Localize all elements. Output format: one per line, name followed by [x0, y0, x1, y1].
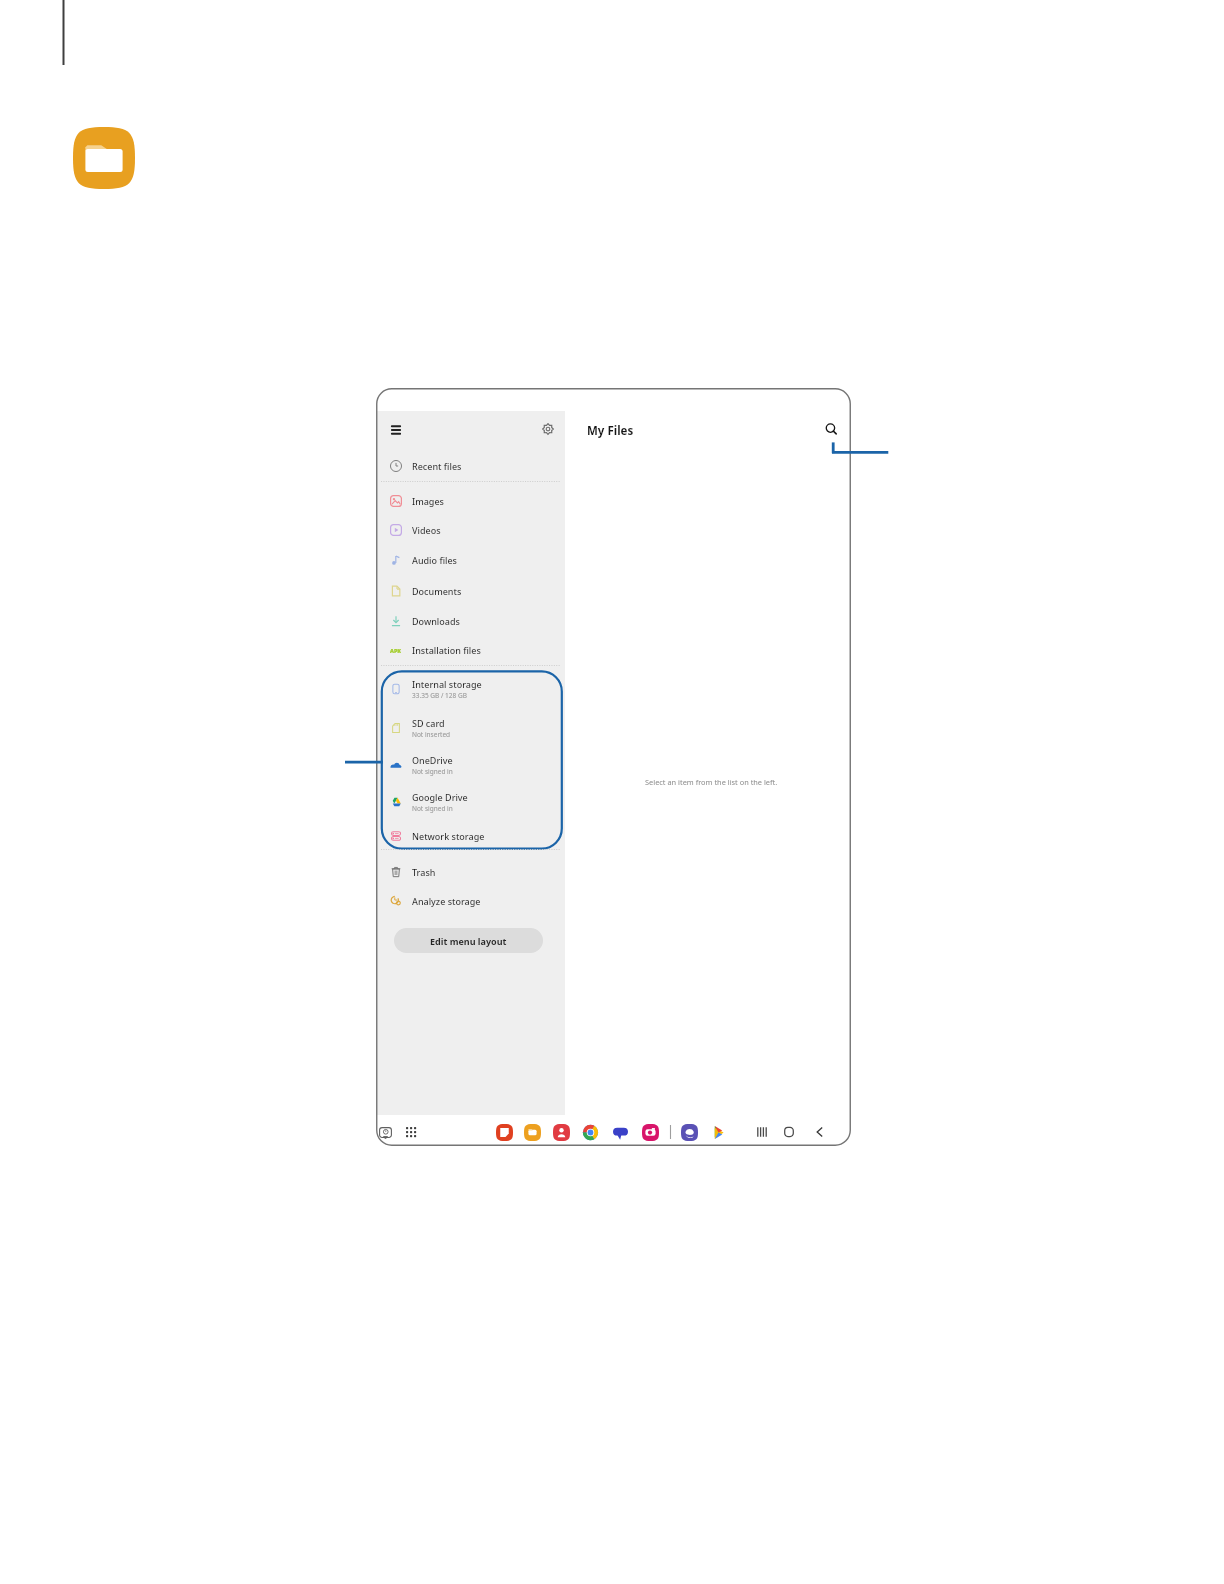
button[interactable]: My Files — [524, 1124, 541, 1141]
button[interactable]: Samsung Internet — [681, 1124, 698, 1141]
button[interactable]: Recent apps — [757, 1126, 767, 1138]
button[interactable]: All apps — [406, 1127, 416, 1137]
button[interactable]: Google Drive — [377, 784, 565, 820]
button[interactable]: Documents — [377, 576, 565, 606]
button[interactable]: Audio files — [377, 545, 565, 575]
staticText: Network storage — [412, 830, 485, 842]
button[interactable]: Internal storage — [377, 671, 565, 707]
staticText: Edit menu layout — [430, 935, 507, 947]
staticText: SD card — [412, 717, 445, 729]
button[interactable]: Network storage — [377, 821, 565, 851]
button[interactable]: Chrome — [582, 1124, 599, 1141]
staticText: Recent files — [412, 460, 462, 472]
button[interactable]: Trash — [377, 857, 565, 887]
button[interactable]: SD card — [377, 710, 565, 746]
button[interactable]: OneDrive — [377, 747, 565, 783]
staticText: Videos — [412, 524, 441, 536]
button[interactable]: Contacts — [553, 1124, 570, 1141]
staticText: Google Drive — [412, 791, 468, 803]
button[interactable]: Home — [784, 1126, 794, 1138]
staticText: OneDrive — [412, 754, 453, 766]
staticText: 33.35 GB / 128 GB — [412, 691, 467, 700]
staticText: Images — [412, 495, 444, 507]
button[interactable]: Recent files shortcut — [379, 1127, 392, 1139]
staticText: Internal storage — [412, 678, 482, 690]
button[interactable]: Recent files — [377, 451, 565, 481]
button[interactable]: Open navigation menu — [391, 422, 401, 438]
button[interactable]: Camera — [642, 1124, 659, 1141]
button[interactable]: Messages — [612, 1124, 629, 1141]
staticText: Audio files — [412, 554, 457, 566]
button[interactable]: Samsung Notes — [496, 1124, 513, 1141]
staticText: Analyze storage — [412, 895, 481, 907]
staticText: Not signed in — [412, 804, 453, 813]
button[interactable]: Downloads — [377, 606, 565, 636]
staticText: Documents — [412, 585, 462, 597]
button[interactable]: My Files app icon — [73, 127, 135, 189]
button[interactable]: Analyze storage — [377, 886, 565, 916]
button[interactable]: Settings — [540, 421, 556, 437]
staticText: Not signed in — [412, 767, 453, 776]
button[interactable]: Images — [377, 486, 565, 516]
button[interactable]: Play Store — [710, 1124, 727, 1141]
button[interactable]: APK — [377, 635, 565, 665]
staticText: My Files — [587, 423, 634, 439]
staticText: Downloads — [412, 615, 460, 627]
button[interactable]: Search — [824, 422, 839, 437]
staticText: Trash — [412, 866, 436, 878]
staticText: APK — [390, 647, 402, 654]
staticText: Not inserted — [412, 730, 451, 739]
staticText: Select an item from the list on the left… — [645, 777, 778, 787]
staticText: Installation files — [412, 644, 481, 656]
button[interactable]: Videos — [377, 515, 565, 545]
button[interactable]: Back — [814, 1126, 824, 1138]
button[interactable]: Edit menu layout — [394, 928, 543, 953]
